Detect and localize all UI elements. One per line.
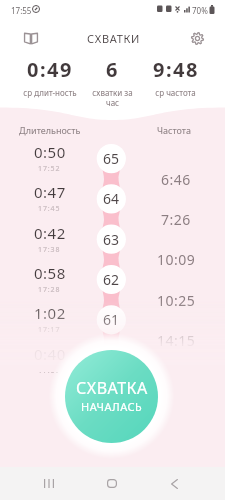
- staticText: 10:25: [157, 291, 196, 310]
- staticText: НАЧАЛАСЬ: [81, 399, 143, 414]
- staticText: 0:49: [27, 56, 73, 83]
- button[interactable]: СХВАТКА: [65, 350, 158, 443]
- staticText: 62: [103, 270, 120, 289]
- button[interactable]: Home: [89, 467, 134, 500]
- staticText: 17:45: [38, 204, 61, 214]
- staticText: СХВАТКА: [76, 377, 148, 399]
- staticText: 65: [103, 149, 120, 168]
- staticText: ср длит-ность: [23, 87, 77, 98]
- button[interactable]: Back: [152, 467, 197, 500]
- staticText: 0:50: [34, 142, 66, 162]
- staticText: схватки за час: [92, 87, 133, 108]
- staticText: 63: [103, 230, 120, 249]
- staticText: 17:38: [38, 245, 61, 255]
- staticText: 17:55: [11, 5, 32, 16]
- staticText: СХВАТКИ: [87, 31, 141, 46]
- staticText: ср частота: [155, 87, 196, 98]
- staticText: 10:09: [157, 250, 196, 269]
- staticText: 17:52: [38, 164, 61, 174]
- staticText: 60: [103, 351, 120, 370]
- staticText: 0:58: [34, 263, 66, 283]
- staticText: Частота: [157, 124, 192, 136]
- staticText: 1:02: [34, 303, 66, 323]
- button[interactable]: 0:58: [14, 263, 85, 295]
- button[interactable]: 1:02: [14, 303, 85, 335]
- button[interactable]: 0:50: [14, 142, 85, 174]
- button[interactable]: Settings: [180, 21, 214, 55]
- staticText: 17:28: [38, 285, 61, 295]
- button[interactable]: 0:42: [14, 223, 85, 255]
- button[interactable]: 0:40: [14, 344, 85, 376]
- staticText: 6:46: [161, 170, 191, 189]
- staticText: 17:17: [38, 325, 61, 335]
- staticText: 70%: [192, 5, 208, 16]
- staticText: 9:48: [153, 56, 199, 83]
- staticText: 0:40: [34, 344, 66, 364]
- button[interactable]: 0:47: [14, 182, 85, 214]
- staticText: 7:26: [161, 210, 191, 229]
- staticText: 64: [103, 189, 120, 208]
- staticText: 0:42: [34, 223, 66, 243]
- button[interactable]: Recent apps: [26, 467, 71, 500]
- staticText: 0:47: [34, 182, 66, 202]
- button[interactable]: Guide: [14, 21, 48, 55]
- staticText: 14:15: [157, 331, 196, 350]
- staticText: Длительность: [19, 124, 81, 136]
- staticText: 17:07: [38, 366, 61, 376]
- staticText: 6: [106, 56, 119, 83]
- staticText: 61: [103, 310, 120, 329]
